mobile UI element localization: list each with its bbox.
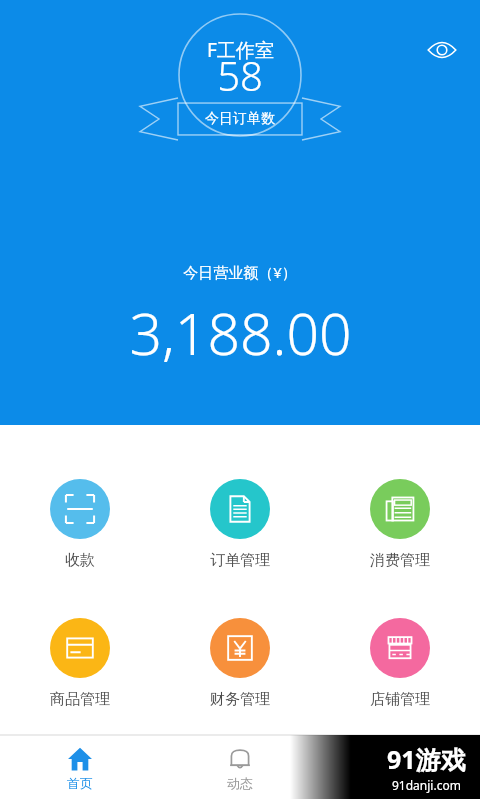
staticText: 今日营业额（¥） [183,262,297,282]
button[interactable]: 商品管理 [0,614,160,713]
button[interactable]: 订单管理 [160,475,320,574]
button[interactable]: 消费管理 [320,475,480,574]
staticText: 91danji.com [392,777,461,793]
staticText: 收款 [65,551,95,570]
staticText: 58 [217,48,263,102]
staticText: F工作室 [207,37,274,63]
staticText: 首页 [67,775,93,791]
button[interactable]: 财务管理 [160,614,320,713]
button[interactable]: Toggle visibility [418,26,466,74]
button[interactable]: 店铺管理 [320,614,480,713]
button[interactable]: 动态 [160,736,320,800]
staticText: 今日订单数 [205,110,275,128]
staticText: 消费管理 [370,551,430,570]
staticText: 3,188.00 [129,294,352,372]
staticText: 订单管理 [210,551,270,570]
staticText: 财务管理 [210,690,270,709]
staticText: 动态 [227,775,253,791]
staticText: 店铺管理 [370,690,430,709]
staticText: 我的 [387,775,413,791]
button[interactable]: 收款 [0,475,160,574]
staticText: 91游戏 [387,742,466,776]
button[interactable]: 我的 [320,736,480,800]
staticText: 商品管理 [50,690,110,709]
button[interactable]: 首页 [0,736,160,800]
